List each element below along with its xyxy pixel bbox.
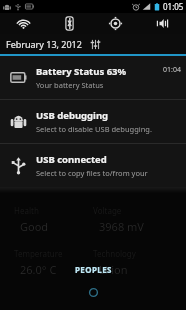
staticText: Your battery Status (36, 80, 104, 90)
button[interactable]: Wi-Fi (0, 13, 46, 34)
staticText: Li-ion (99, 262, 128, 277)
staticText: Select to disable USB debugging. (36, 124, 152, 134)
button[interactable]: Bluetooth (46, 13, 92, 34)
button[interactable]: USB connected (0, 144, 186, 187)
staticText: Health (14, 205, 39, 216)
button[interactable]: Sound (139, 13, 186, 34)
button[interactable]: Battery Status 63% (0, 56, 186, 99)
staticText: Temperature (14, 248, 63, 259)
button[interactable]: Settings (88, 37, 102, 51)
button[interactable]: GPS (92, 13, 139, 34)
staticText: Good (20, 219, 49, 234)
staticText: USB debugging connected (36, 109, 152, 122)
staticText: February 13, 2012 (6, 38, 82, 50)
staticText: Technology (93, 248, 136, 259)
staticText: Battery Status 63% (36, 65, 127, 78)
staticText: 01:04 (163, 65, 181, 75)
button[interactable]: USB debugging connected (0, 100, 186, 143)
staticText: 01:05 (163, 1, 184, 12)
button[interactable]: Home (85, 284, 101, 300)
staticText: 3968 mV (99, 219, 144, 234)
staticText: 26.0° C (20, 262, 57, 277)
staticText: Voltage (93, 205, 122, 216)
staticText: PEOPLES (75, 264, 112, 275)
staticText: USB connected (36, 153, 107, 166)
staticText: Select to copy files to/from your comput… (36, 168, 152, 178)
